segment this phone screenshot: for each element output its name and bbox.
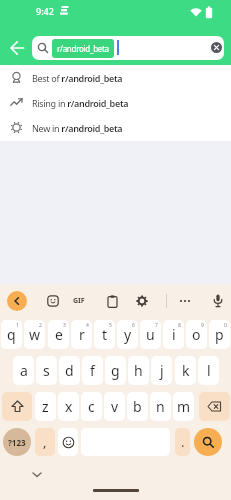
button[interactable]: .	[175, 428, 190, 456]
staticText: 8	[178, 322, 181, 329]
button[interactable]: r	[71, 320, 92, 349]
button[interactable]: t	[94, 320, 115, 349]
button[interactable]: s	[36, 356, 57, 385]
button[interactable]: p	[209, 320, 230, 349]
staticText: d	[65, 361, 74, 380]
button[interactable]: c	[81, 392, 102, 421]
staticText: u	[146, 325, 155, 344]
staticText: 0	[224, 322, 227, 329]
staticText: 2	[39, 322, 42, 329]
staticText: m	[177, 397, 191, 416]
button[interactable]: Rising in r/android_beta	[0, 90, 231, 115]
staticText: w	[29, 325, 41, 344]
staticText: r/android_beta	[57, 43, 109, 54]
button[interactable]: j	[151, 356, 172, 385]
button[interactable]: ,	[35, 428, 55, 456]
button[interactable]: b	[127, 392, 148, 421]
button[interactable]: g	[105, 356, 126, 385]
staticText: 9:42	[36, 5, 54, 17]
button[interactable]	[211, 293, 225, 309]
staticText: h	[134, 361, 143, 380]
button[interactable]: Best of r/android_beta	[0, 65, 231, 90]
button[interactable]	[176, 294, 194, 308]
staticText: p	[215, 325, 224, 344]
staticText: 4	[86, 322, 89, 329]
button[interactable]: z	[35, 392, 56, 421]
button[interactable]	[58, 428, 78, 456]
staticText: e	[55, 325, 63, 344]
button[interactable]: d	[59, 356, 80, 385]
staticText: z	[42, 397, 49, 416]
button[interactable]: GIF	[68, 294, 90, 308]
button[interactable]: e	[48, 320, 69, 349]
staticText: 9	[201, 322, 204, 329]
staticText: 1	[16, 322, 19, 329]
staticText: 3	[63, 322, 66, 329]
button[interactable]: m	[173, 392, 194, 421]
button[interactable]	[194, 428, 222, 456]
staticText: k	[182, 361, 190, 380]
button[interactable]	[2, 392, 32, 421]
staticText: ,	[43, 433, 47, 451]
button[interactable]: k	[175, 356, 196, 385]
staticText: Rising in r/android_beta	[32, 97, 129, 109]
button[interactable]: ?123	[3, 428, 31, 456]
button[interactable]: u	[140, 320, 161, 349]
staticText: l	[207, 361, 211, 380]
staticText: GIF	[73, 296, 85, 306]
staticText: q	[7, 325, 16, 344]
staticText: 7	[155, 322, 158, 329]
button[interactable]	[135, 294, 149, 308]
button[interactable]: l	[198, 356, 219, 385]
staticText: f	[90, 361, 95, 380]
button[interactable]	[7, 291, 27, 311]
button[interactable]: a	[13, 356, 34, 385]
staticText: o	[192, 325, 201, 344]
staticText: c	[88, 397, 95, 416]
staticText: 5	[109, 322, 112, 329]
staticText: r	[79, 325, 85, 344]
staticText: b	[133, 397, 142, 416]
button[interactable]	[211, 42, 222, 53]
button[interactable]	[105, 294, 119, 308]
staticText: .	[181, 433, 185, 451]
button[interactable]: New in r/android_beta	[0, 115, 231, 140]
staticText: ?123	[8, 437, 26, 448]
button[interactable]: x	[58, 392, 79, 421]
staticText: t	[102, 325, 108, 344]
button[interactable]: y	[117, 320, 138, 349]
button[interactable]: n	[150, 392, 171, 421]
staticText: Best of r/android_beta	[32, 72, 123, 84]
staticText: g	[111, 361, 120, 380]
staticText: j	[160, 361, 164, 380]
staticText: x	[65, 397, 73, 416]
staticText: a	[20, 361, 28, 380]
staticText: 6	[132, 322, 135, 329]
button[interactable]: v	[104, 392, 125, 421]
button[interactable]: o	[186, 320, 207, 349]
staticText: i	[172, 325, 176, 344]
staticText: New in r/android_beta	[32, 122, 123, 134]
button[interactable]: w	[24, 320, 45, 349]
button[interactable]: h	[128, 356, 149, 385]
button[interactable]	[5, 36, 29, 60]
button[interactable]	[46, 294, 60, 308]
button[interactable]: q	[1, 320, 22, 349]
staticText: y	[124, 325, 132, 344]
button[interactable]	[199, 392, 230, 421]
button[interactable]: f	[82, 356, 103, 385]
staticText: s	[43, 361, 50, 380]
button[interactable]: i	[163, 320, 184, 349]
staticText: v	[111, 397, 119, 416]
staticText: n	[156, 397, 165, 416]
